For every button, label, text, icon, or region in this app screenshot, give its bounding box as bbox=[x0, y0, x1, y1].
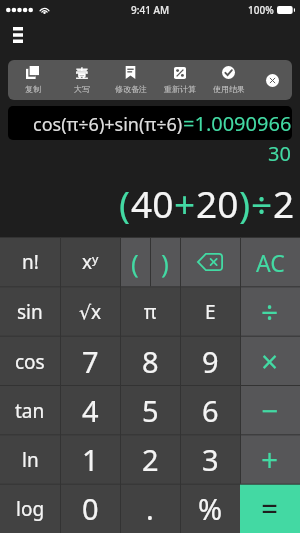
button[interactable]: cos bbox=[0, 337, 60, 386]
button[interactable]: Close bbox=[253, 60, 292, 100]
staticText: ( bbox=[131, 245, 139, 280]
button[interactable]: tan bbox=[0, 386, 60, 435]
staticText: ) bbox=[239, 178, 251, 228]
staticText: 3 bbox=[202, 440, 219, 479]
button[interactable]: = bbox=[240, 484, 300, 533]
button[interactable]: 9 bbox=[180, 337, 240, 386]
button[interactable]: . bbox=[120, 484, 180, 533]
staticText: 0 bbox=[82, 489, 99, 528]
staticText: 2 bbox=[273, 178, 295, 228]
button[interactable]: 6 bbox=[180, 386, 240, 435]
button[interactable]: % bbox=[180, 484, 240, 533]
button[interactable]: √x bbox=[60, 287, 120, 337]
button[interactable]: 复制 bbox=[8, 60, 57, 100]
staticText: 大写 bbox=[74, 84, 90, 94]
button[interactable]: 7 bbox=[60, 337, 120, 386]
staticText: 使用结果 bbox=[213, 84, 245, 94]
staticText: ( bbox=[119, 178, 131, 228]
button[interactable]: π bbox=[120, 287, 180, 337]
staticText: 6 bbox=[202, 391, 219, 430]
staticText: 重新计算 bbox=[164, 84, 196, 94]
staticText: ÷ bbox=[251, 178, 273, 228]
button[interactable]: 2 bbox=[120, 435, 180, 484]
button[interactable]: ln bbox=[0, 435, 60, 484]
button[interactable]: AC bbox=[240, 237, 300, 287]
button[interactable]: E bbox=[180, 287, 240, 337]
button[interactable]: sin bbox=[0, 287, 60, 337]
staticText: 2 bbox=[142, 440, 159, 479]
button[interactable]: × bbox=[240, 337, 300, 386]
button[interactable]: ( bbox=[120, 237, 150, 287]
staticText: + bbox=[174, 178, 196, 228]
staticText: 壹 bbox=[76, 66, 88, 79]
staticText: 修改备注 bbox=[115, 84, 147, 94]
staticText: 30 bbox=[268, 140, 291, 167]
button[interactable]: xʸ bbox=[60, 237, 120, 287]
staticText: ) bbox=[161, 245, 169, 280]
staticText: × bbox=[261, 341, 279, 382]
staticText: 9 bbox=[202, 342, 219, 381]
staticText: 7 bbox=[82, 342, 99, 381]
button[interactable]: 壹 bbox=[57, 60, 106, 100]
staticText: xʸ bbox=[82, 249, 99, 275]
staticText: sin bbox=[17, 299, 43, 325]
button[interactable]: log bbox=[0, 484, 60, 533]
button[interactable]: n! bbox=[0, 237, 60, 287]
button[interactable]: 修改备注 bbox=[106, 60, 155, 100]
button[interactable]: ÷ bbox=[240, 287, 300, 337]
staticText: − bbox=[261, 390, 279, 431]
button[interactable]: cos(π÷6)+sin(π÷6) bbox=[8, 106, 292, 140]
staticText: 1 bbox=[82, 440, 99, 479]
button[interactable]: 重新计算 bbox=[155, 60, 204, 100]
staticText: ÷ bbox=[261, 292, 279, 333]
staticText: =1.0090966 bbox=[183, 110, 292, 137]
staticText: cos bbox=[15, 349, 45, 375]
button[interactable]: 8 bbox=[120, 337, 180, 386]
staticText: ln bbox=[22, 447, 39, 473]
button[interactable]: Menu bbox=[6, 23, 30, 47]
staticText: . bbox=[146, 489, 154, 528]
staticText: + bbox=[261, 439, 279, 480]
staticText: π bbox=[144, 299, 157, 325]
button[interactable]: 5 bbox=[120, 386, 180, 435]
staticText: n! bbox=[22, 249, 39, 275]
staticText: 20 bbox=[196, 178, 239, 228]
staticText: 8 bbox=[142, 342, 159, 381]
button[interactable]: 使用结果 bbox=[204, 60, 253, 100]
button[interactable]: Delete bbox=[180, 237, 240, 287]
staticText: = bbox=[261, 488, 279, 529]
button[interactable]: 0 bbox=[60, 484, 120, 533]
staticText: 5 bbox=[142, 391, 159, 430]
staticText: √x bbox=[79, 299, 102, 325]
button[interactable]: ) bbox=[150, 237, 180, 287]
staticText: % bbox=[198, 489, 223, 528]
button[interactable]: 3 bbox=[180, 435, 240, 484]
button[interactable]: 4 bbox=[60, 386, 120, 435]
other: Delete bbox=[197, 253, 223, 271]
staticText: 9:41 AM bbox=[131, 3, 170, 17]
staticText: 4 bbox=[82, 391, 99, 430]
staticText: E bbox=[205, 299, 216, 325]
staticText: AC bbox=[256, 247, 285, 278]
button[interactable]: 1 bbox=[60, 435, 120, 484]
staticText: 100% bbox=[248, 3, 274, 17]
staticText: tan bbox=[15, 398, 45, 424]
staticText: log bbox=[16, 496, 45, 522]
staticText: 复制 bbox=[25, 84, 41, 94]
staticText: 40 bbox=[131, 178, 174, 228]
staticText: cos(π÷6)+sin(π÷6) bbox=[33, 112, 183, 137]
button[interactable]: + bbox=[240, 435, 300, 484]
button[interactable]: − bbox=[240, 386, 300, 435]
